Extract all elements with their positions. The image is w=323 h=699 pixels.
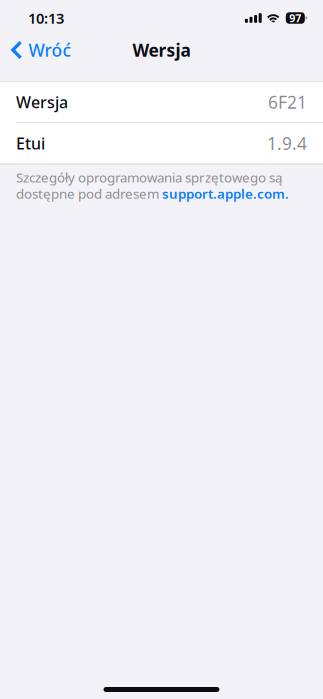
button[interactable]: support.apple.com. [162, 185, 289, 202]
staticText: Szczegóły oprogramowania sprzętowego są [16, 168, 282, 186]
staticText: Wersja [16, 91, 68, 113]
button[interactable]: Wróć [0, 35, 81, 65]
staticText: Wróć [28, 38, 71, 61]
staticText: 6F21 [268, 90, 307, 113]
staticText: support.apple.com. [162, 185, 289, 202]
staticText: dostępne pod adresem [16, 185, 162, 202]
staticText: Etui [16, 133, 45, 154]
staticText: 1.9.4 [267, 132, 307, 155]
staticText: 97 [289, 11, 301, 25]
button[interactable]: Etui [0, 123, 323, 163]
staticText: 10:13 [28, 8, 64, 28]
staticText: Wersja [132, 38, 190, 61]
button[interactable]: Wersja [0, 82, 323, 122]
